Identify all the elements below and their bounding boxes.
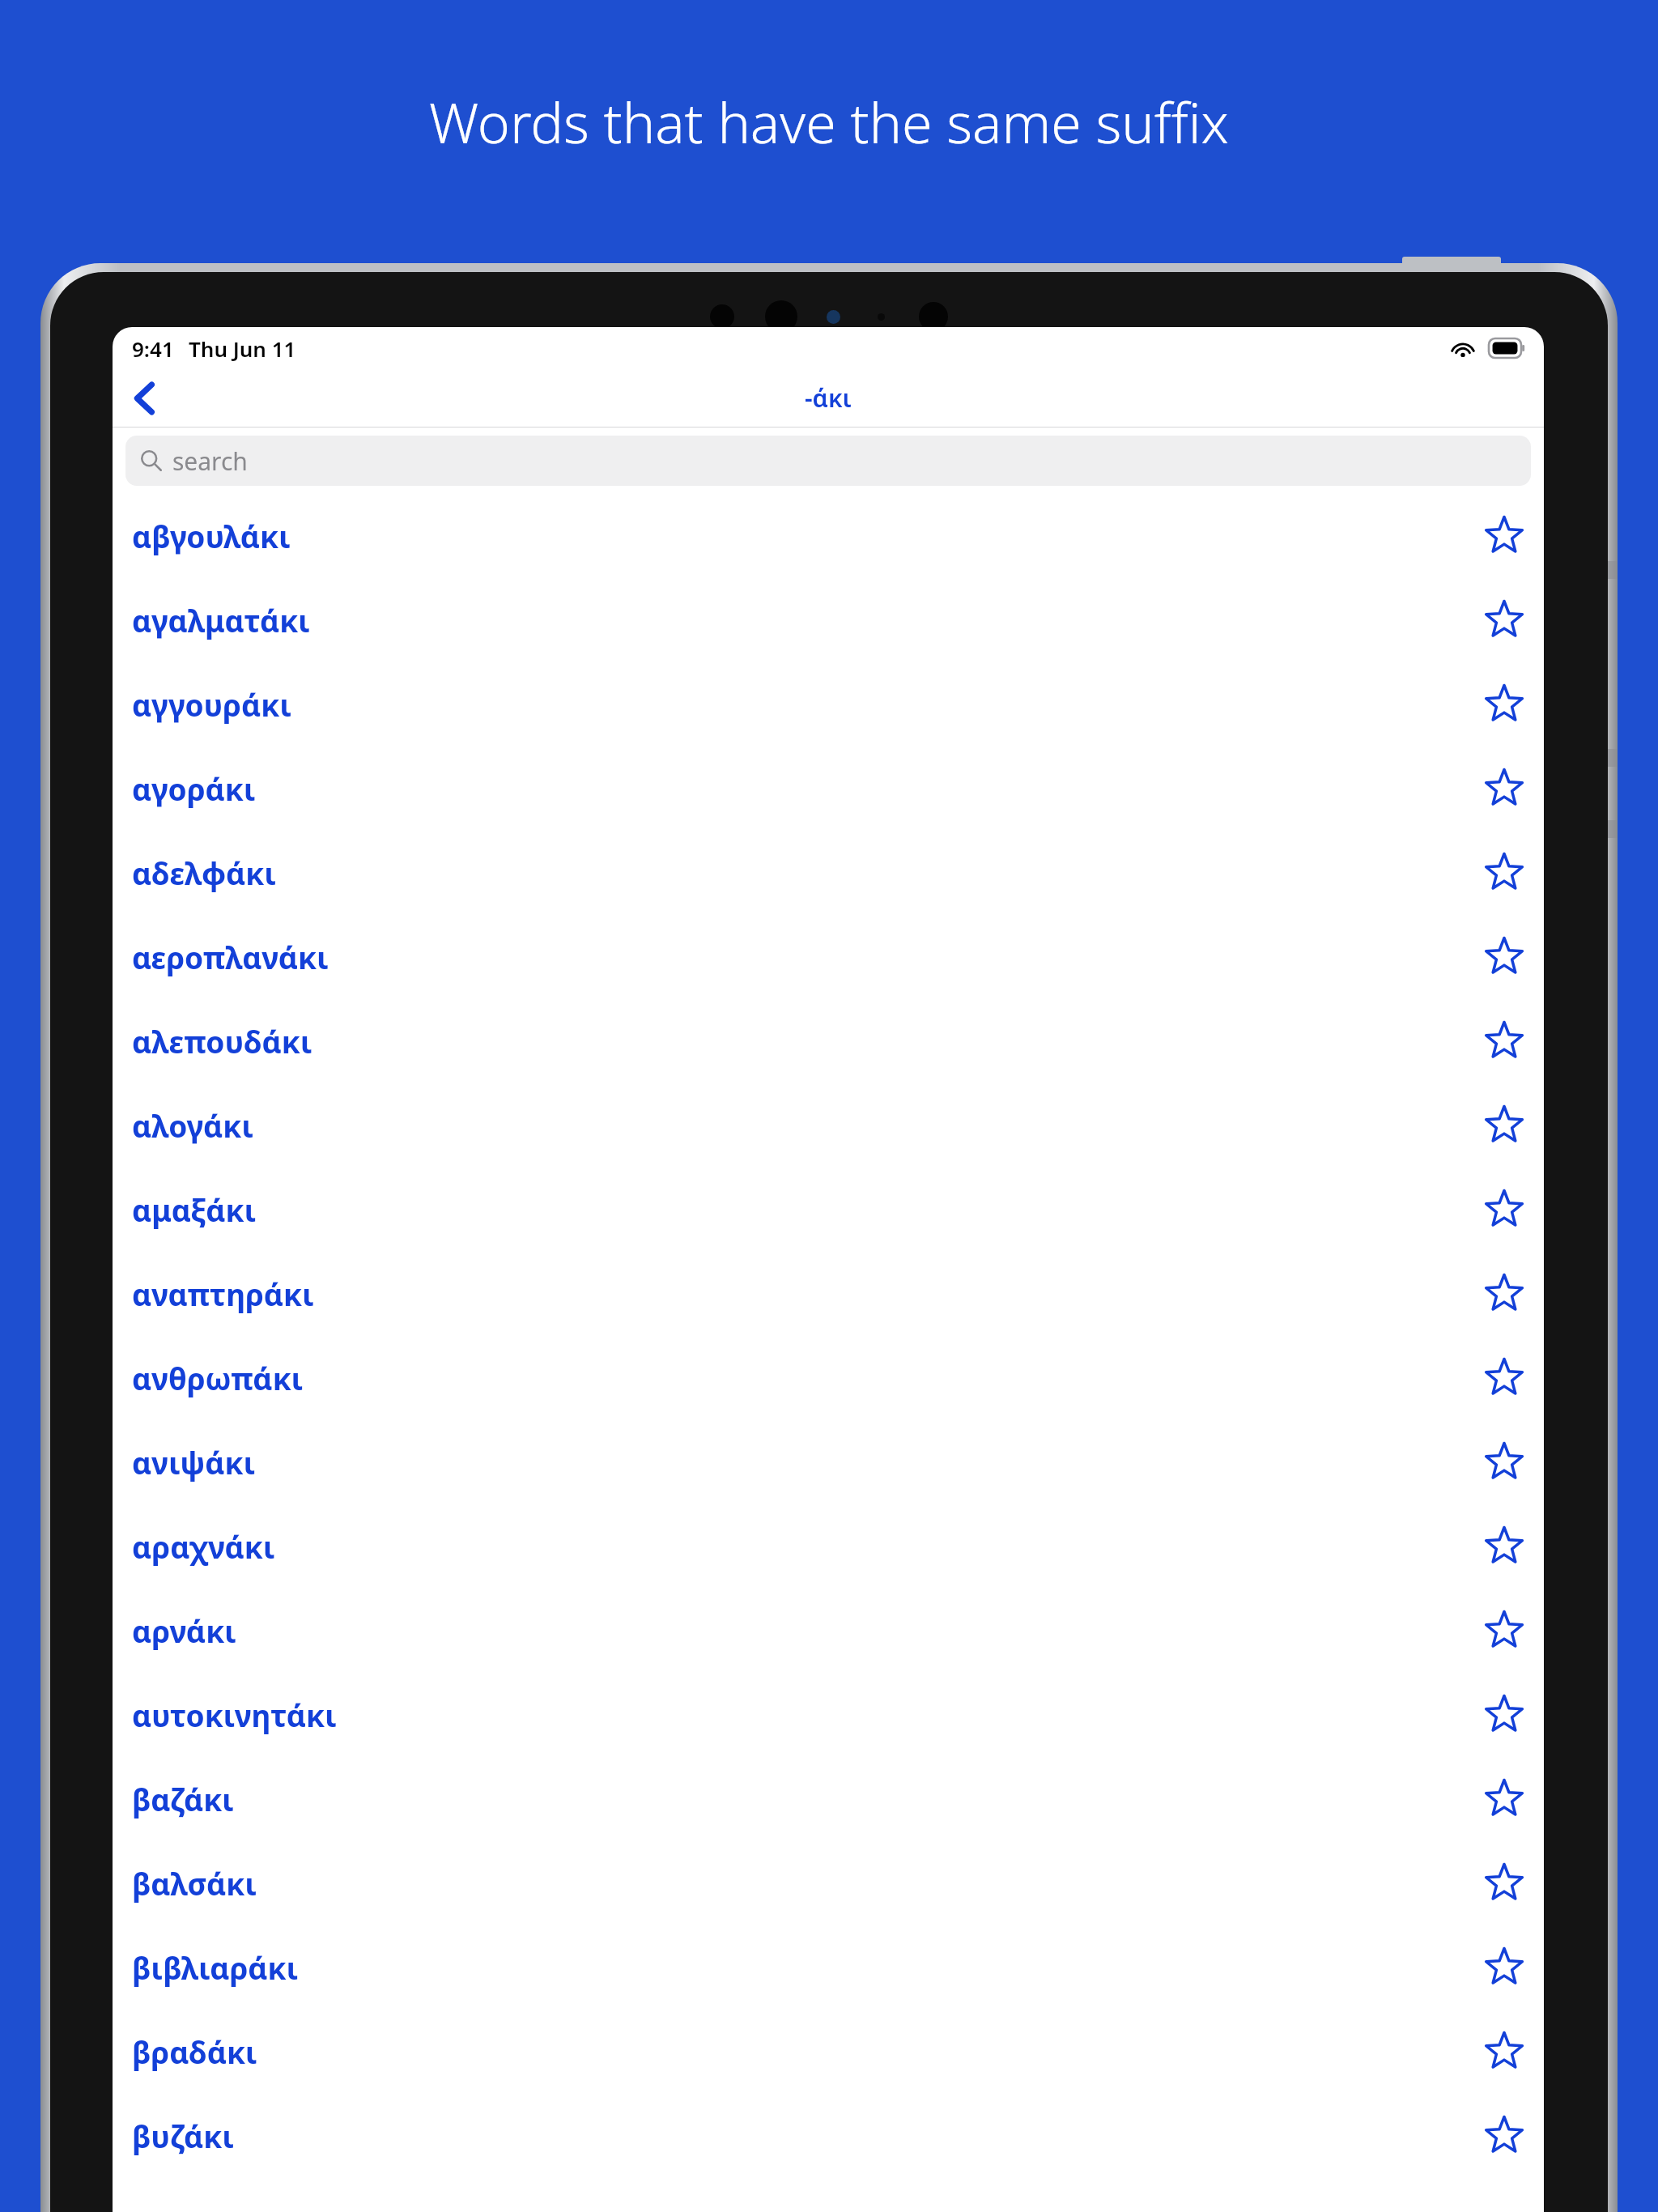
button[interactable]: Favorite: [1473, 841, 1536, 904]
button[interactable]: αραχνάκι: [113, 1504, 1544, 1589]
button[interactable]: αλογάκι: [113, 1083, 1544, 1168]
button[interactable]: Favorite: [1473, 1010, 1536, 1073]
staticText: βυζάκι: [132, 2116, 234, 2156]
staticText: αγοράκι: [132, 768, 256, 809]
button[interactable]: Back: [113, 369, 176, 427]
staticText: αδελφάκι: [132, 853, 277, 893]
button[interactable]: Favorite: [1473, 1346, 1536, 1410]
staticText: αλεπουδάκι: [132, 1021, 312, 1061]
button[interactable]: αγγουράκι: [113, 662, 1544, 747]
button[interactable]: Favorite: [1473, 1767, 1536, 1831]
staticText: αγαλματάκι: [132, 600, 310, 640]
staticText: αυτοκινητάκι: [132, 1695, 337, 1735]
button[interactable]: αναπτηράκι: [113, 1252, 1544, 1336]
staticText: βαζάκι: [132, 1779, 234, 1819]
button[interactable]: Favorite: [1473, 925, 1536, 989]
staticText: αεροπλανάκι: [132, 937, 329, 977]
button[interactable]: αλεπουδάκι: [113, 999, 1544, 1083]
staticText: βαλσάκι: [132, 1863, 257, 1904]
button[interactable]: αγαλματάκι: [113, 578, 1544, 662]
button[interactable]: αγοράκι: [113, 747, 1544, 831]
staticText: βιβλιαράκι: [132, 1947, 299, 1988]
button[interactable]: Favorite: [1473, 2104, 1536, 2167]
staticText: αναπτηράκι: [132, 1274, 314, 1314]
button[interactable]: Favorite: [1473, 1094, 1536, 1157]
staticText: βραδάκι: [132, 2031, 257, 2072]
staticText: 9:41: [132, 334, 174, 363]
button[interactable]: Favorite: [1473, 1262, 1536, 1325]
button[interactable]: Favorite: [1473, 1683, 1536, 1746]
button[interactable]: αεροπλανάκι: [113, 915, 1544, 999]
button[interactable]: βιβλιαράκι: [113, 1925, 1544, 2010]
button[interactable]: ανιψάκι: [113, 1420, 1544, 1504]
button[interactable]: βαλσάκι: [113, 1841, 1544, 1925]
button[interactable]: search: [125, 436, 1531, 486]
button[interactable]: Favorite: [1473, 589, 1536, 652]
button[interactable]: Favorite: [1473, 1599, 1536, 1662]
staticText: αγγουράκι: [132, 684, 291, 725]
button[interactable]: Favorite: [1473, 504, 1536, 568]
staticText: αλογάκι: [132, 1105, 254, 1146]
staticText: ανιψάκι: [132, 1442, 256, 1482]
staticText: -άκι: [805, 381, 852, 415]
button[interactable]: Favorite: [1473, 1178, 1536, 1241]
staticText: αμαξάκι: [132, 1189, 257, 1230]
button[interactable]: Favorite: [1473, 1852, 1536, 1915]
button[interactable]: Favorite: [1473, 2020, 1536, 2083]
button[interactable]: Favorite: [1473, 1431, 1536, 1494]
button[interactable]: βραδάκι: [113, 2010, 1544, 2094]
staticText: search: [172, 445, 248, 478]
button[interactable]: Favorite: [1473, 673, 1536, 736]
staticText: Words that have the same suffix: [429, 84, 1229, 160]
button[interactable]: αυτοκινητάκι: [113, 1673, 1544, 1757]
button[interactable]: ανθρωπάκι: [113, 1336, 1544, 1420]
staticText: αβγουλάκι: [132, 516, 291, 556]
staticText: ανθρωπάκι: [132, 1358, 304, 1398]
button[interactable]: αμαξάκι: [113, 1168, 1544, 1252]
button[interactable]: Favorite: [1473, 1515, 1536, 1578]
staticText: αραχνάκι: [132, 1526, 275, 1567]
button[interactable]: αβγουλάκι: [113, 494, 1544, 578]
button[interactable]: αρνάκι: [113, 1589, 1544, 1673]
button[interactable]: Favorite: [1473, 1936, 1536, 1999]
staticText: αρνάκι: [132, 1610, 236, 1651]
staticText: Thu Jun 11: [189, 334, 296, 363]
button[interactable]: βυζάκι: [113, 2094, 1544, 2178]
button[interactable]: Favorite: [1473, 757, 1536, 820]
button[interactable]: αδελφάκι: [113, 831, 1544, 915]
button[interactable]: βαζάκι: [113, 1757, 1544, 1841]
